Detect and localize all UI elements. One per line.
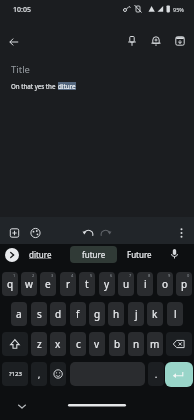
staticText: n [133,337,140,351]
staticText: diture [29,249,52,260]
button[interactable]: On that yes the [11,82,76,90]
staticText: d [55,307,62,321]
staticText: Title [11,63,30,76]
staticText: y [104,277,110,291]
button[interactable] [26,221,45,240]
staticText: h [113,307,120,321]
button[interactable]: g [89,302,105,326]
staticText: x [55,337,61,351]
staticText: f [76,307,80,321]
button[interactable]: a [11,302,27,326]
button[interactable]: c [70,332,86,356]
staticText: 8 [148,273,151,278]
button[interactable] [79,221,98,240]
button[interactable] [172,221,191,240]
staticText: 4 [71,273,74,278]
staticText: future [82,249,106,260]
button[interactable] [70,362,145,386]
button[interactable] [147,32,165,50]
staticText: r [66,277,71,291]
button[interactable]: u [118,272,134,296]
staticText: e [45,277,51,291]
staticText: t [85,277,89,291]
button[interactable]: s [31,302,47,326]
staticText: 95% [173,6,184,13]
staticText: k [152,307,158,321]
button[interactable]: Title [11,63,181,79]
staticText: w [25,277,33,291]
button[interactable] [171,32,189,50]
staticText: b [114,337,121,351]
staticText: 10:05 [13,5,31,15]
button[interactable] [165,362,193,387]
staticText: 3 [51,273,54,278]
staticText: ?123 [9,370,22,378]
button[interactable]: x [50,332,66,356]
staticText: z [37,337,42,351]
button[interactable]: t [79,272,95,296]
staticText: g [94,307,101,321]
button[interactable]: h [108,302,124,326]
staticText: p [181,277,188,291]
staticText: o [162,277,169,291]
button[interactable]: w [21,272,37,296]
staticText: , [38,369,41,380]
button[interactable]: Future [127,246,152,263]
button[interactable]: o [157,272,173,296]
button[interactable]: j [128,302,144,326]
staticText: v [94,337,100,351]
button[interactable]: n [128,332,144,356]
button[interactable] [5,221,24,240]
staticText: 2 [32,273,35,278]
staticText: m [150,337,160,351]
button[interactable] [7,36,21,50]
button[interactable] [123,32,141,50]
button[interactable]: ?123 [2,362,28,386]
staticText: 5 [90,273,93,278]
button[interactable] [50,362,66,386]
staticText: On that yes the [11,82,58,90]
button[interactable] [166,246,183,263]
button[interactable] [96,221,115,240]
button[interactable]: . [148,362,164,386]
button[interactable]: l [167,302,183,326]
button[interactable]: , [31,362,47,386]
staticText: a [16,307,22,321]
button[interactable]: f [70,302,86,326]
button[interactable]: p [176,272,192,296]
staticText: j [135,307,138,321]
staticText: s [37,307,42,321]
staticText: diture [58,82,76,90]
staticText: i [144,277,147,291]
staticText: . [155,369,158,380]
staticText: l [174,307,177,321]
button[interactable]: future [70,246,117,263]
staticText: 9 [168,273,171,278]
button[interactable]: v [89,332,105,356]
staticText: u [123,277,130,291]
button[interactable]: i [137,272,153,296]
staticText: 0 [187,273,190,278]
button[interactable]: k [147,302,163,326]
button[interactable]: m [147,332,163,356]
button[interactable]: y [99,272,115,296]
button[interactable]: diture [29,246,52,263]
button[interactable]: z [31,332,47,356]
staticText: Future [127,249,152,260]
button[interactable]: r [60,272,76,296]
button[interactable]: b [109,332,125,356]
button[interactable]: q [2,272,18,296]
staticText: 7 [129,273,132,278]
button[interactable] [5,248,19,262]
button[interactable]: e [40,272,56,296]
button[interactable]: d [50,302,66,326]
staticText: c [76,337,81,351]
staticText: 6 [110,273,113,278]
staticText: 1 [13,273,16,278]
staticText: q [7,277,14,291]
button[interactable] [166,332,192,356]
button[interactable] [2,332,28,356]
